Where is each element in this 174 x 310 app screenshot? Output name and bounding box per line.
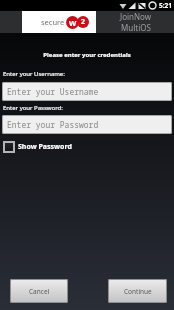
staticText: Enter your Password <box>7 119 99 130</box>
staticText: secure <box>41 17 65 27</box>
staticText: W <box>69 18 77 28</box>
staticText: Enter your Username: <box>3 70 65 78</box>
button[interactable]: secure <box>22 11 91 33</box>
staticText: JoinNow <box>120 11 152 22</box>
button[interactable]: Enter your Password <box>2 115 172 134</box>
button[interactable]: Continue <box>108 279 167 303</box>
staticText: Enter your Username <box>7 86 99 97</box>
button[interactable]: Cancel <box>10 279 68 303</box>
staticText: 5:21 <box>159 1 172 10</box>
staticText: Continue <box>124 287 152 296</box>
staticText: Cancel <box>29 287 50 296</box>
staticText: Show Password <box>18 142 72 152</box>
staticText: Enter your Password: <box>3 104 63 112</box>
staticText: 2 <box>81 17 86 27</box>
staticText: MultiOS <box>121 22 151 31</box>
button[interactable]: Enter your Username <box>2 82 172 101</box>
staticText: Please enter your credentials <box>43 51 131 59</box>
button[interactable]: Show Password <box>3 141 72 153</box>
